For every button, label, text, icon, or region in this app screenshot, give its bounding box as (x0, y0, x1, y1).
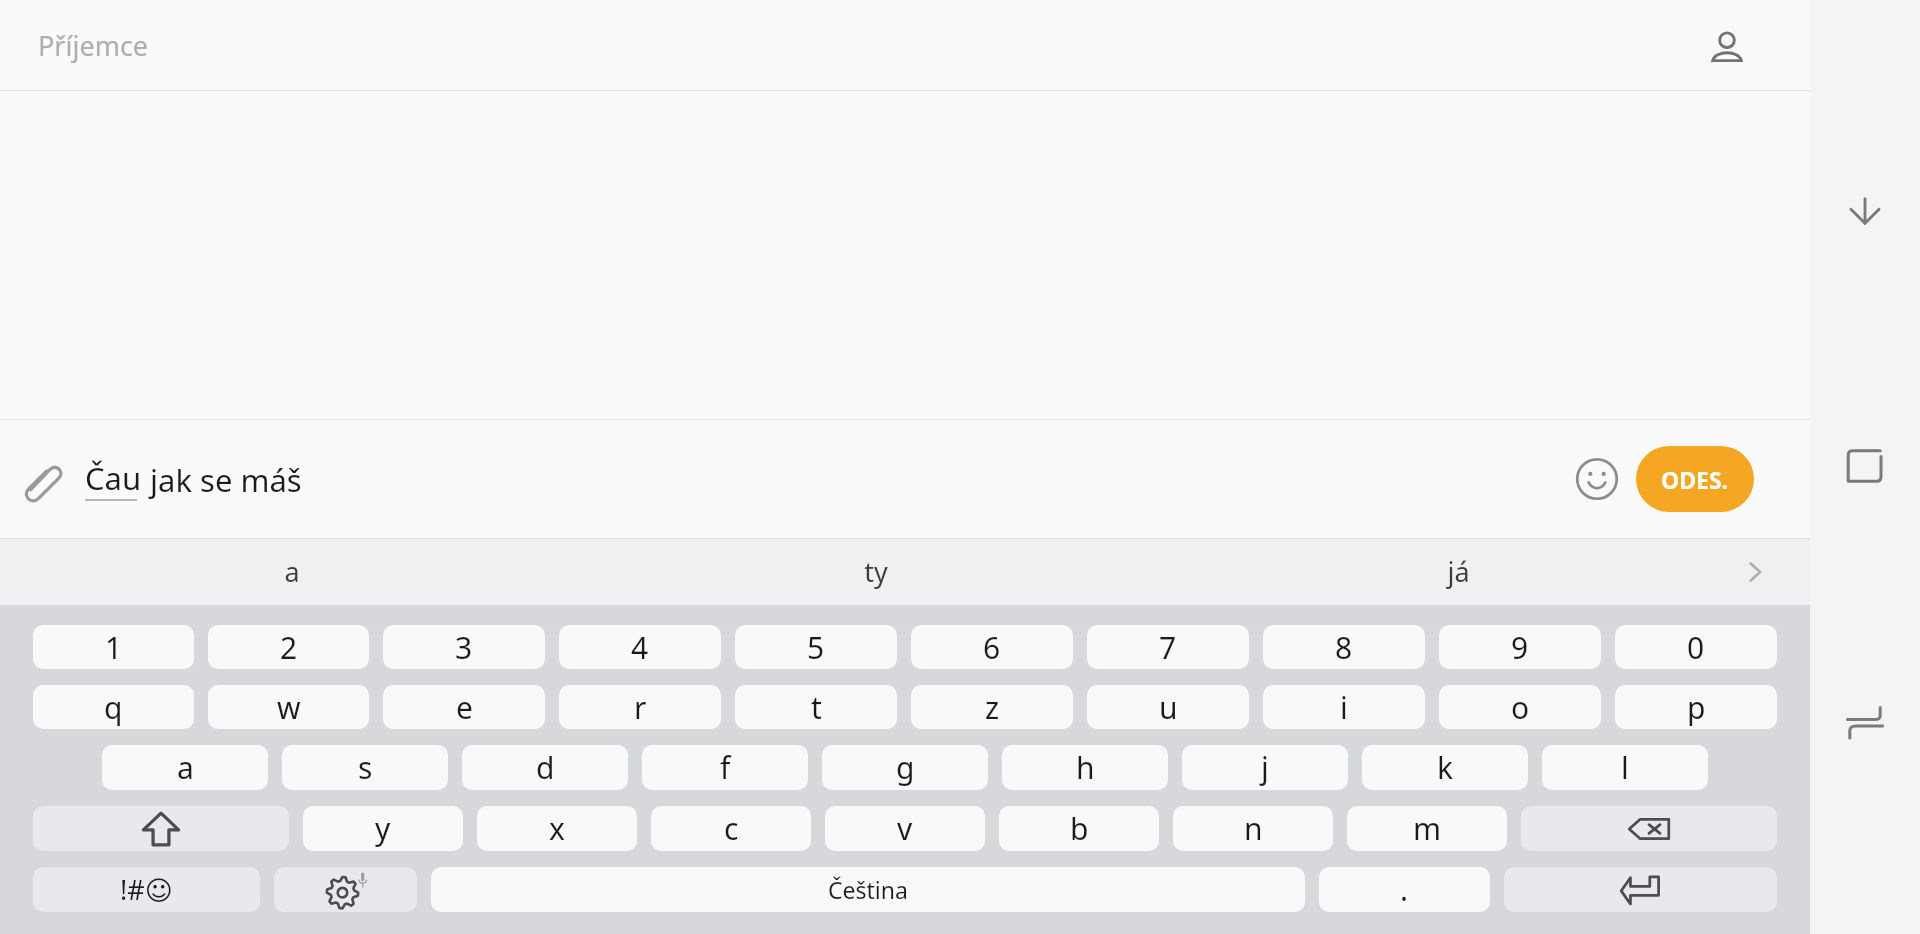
button[interactable]: l (1542, 745, 1708, 790)
staticText: b (1070, 808, 1089, 849)
button[interactable]: 8 (1263, 625, 1425, 669)
staticText: f (720, 747, 731, 788)
staticText: 4 (631, 627, 649, 668)
button[interactable]: !#☺ (33, 867, 260, 912)
staticText: Příjemce (38, 27, 149, 64)
button[interactable]: g (822, 745, 988, 790)
staticText: p (1687, 687, 1706, 728)
button[interactable]: f (642, 745, 808, 790)
staticText: 3 (455, 627, 473, 668)
button[interactable]: a (102, 745, 268, 790)
button[interactable]: b (999, 806, 1159, 851)
staticText: w (277, 687, 301, 728)
staticText: m (1413, 808, 1442, 849)
staticText: . (1400, 869, 1409, 910)
button[interactable]: Back (1821, 678, 1909, 766)
button[interactable]: a (0, 538, 584, 605)
staticText: ty (864, 553, 888, 590)
button[interactable]: t (735, 685, 897, 729)
button[interactable]: Attach (14, 450, 72, 508)
button[interactable]: Čeština (431, 867, 1305, 912)
staticText: a (284, 553, 300, 590)
button[interactable]: Recents (1821, 422, 1909, 510)
button[interactable]: i (1263, 685, 1425, 729)
button[interactable]: n (1173, 806, 1333, 851)
staticText: 7 (1159, 627, 1177, 668)
button[interactable]: Hide keyboard (1821, 167, 1909, 255)
staticText: Čeština (828, 874, 908, 905)
staticText: u (1159, 687, 1178, 728)
staticText: jak se máš (142, 459, 302, 501)
staticText: h (1076, 747, 1095, 788)
staticText: i (1340, 687, 1348, 728)
button[interactable]: 5 (735, 625, 897, 669)
staticText: 5 (807, 627, 825, 668)
staticText: c (724, 808, 739, 849)
staticText: !#☺ (120, 871, 173, 908)
button[interactable]: z (911, 685, 1073, 729)
staticText: ODES. (1661, 464, 1729, 495)
staticText: x (549, 808, 565, 849)
button[interactable]: x (477, 806, 637, 851)
button[interactable]: o (1439, 685, 1601, 729)
button[interactable]: 1 (33, 625, 194, 669)
button[interactable]: j (1182, 745, 1348, 790)
button[interactable]: . (1319, 867, 1490, 912)
staticText: d (536, 747, 555, 788)
staticText: a (177, 747, 194, 788)
staticText: já (1447, 553, 1470, 590)
staticText: t (811, 687, 822, 728)
button[interactable]: h (1002, 745, 1168, 790)
staticText: l (1621, 747, 1629, 788)
button[interactable]: já (1167, 538, 1750, 605)
button[interactable]: r (559, 685, 721, 729)
button[interactable]: Contacts (1702, 21, 1752, 71)
button[interactable]: 0 (1615, 625, 1777, 669)
button[interactable]: ODES. (1636, 446, 1754, 512)
staticText: 6 (983, 627, 1001, 668)
staticText: n (1244, 808, 1263, 849)
staticText: k (1437, 747, 1454, 788)
staticText: j (1261, 747, 1269, 788)
button[interactable]: More suggestions (1732, 549, 1778, 595)
staticText: 2 (280, 627, 298, 668)
staticText: r (634, 687, 647, 728)
button[interactable]: e (383, 685, 545, 729)
staticText: v (897, 808, 913, 849)
button[interactable]: ty (584, 538, 1167, 605)
button[interactable]: 6 (911, 625, 1073, 669)
staticText: 0 (1687, 627, 1705, 668)
staticText: 1 (105, 627, 123, 668)
button[interactable]: Backspace (1521, 806, 1777, 851)
button[interactable]: Settings (274, 867, 417, 912)
button[interactable]: u (1087, 685, 1249, 729)
button[interactable]: 7 (1087, 625, 1249, 669)
staticText: s (358, 747, 373, 788)
staticText: Čau (85, 457, 142, 499)
button[interactable]: 4 (559, 625, 721, 669)
staticText: q (104, 687, 123, 728)
button[interactable]: 3 (383, 625, 545, 669)
staticText: 8 (1335, 627, 1353, 668)
staticText: 9 (1511, 627, 1529, 668)
button[interactable]: c (651, 806, 811, 851)
button[interactable]: y (303, 806, 463, 851)
button[interactable]: 9 (1439, 625, 1601, 669)
staticText: y (375, 808, 391, 849)
button[interactable]: k (1362, 745, 1528, 790)
button[interactable]: Emoji (1569, 451, 1625, 507)
button[interactable]: m (1347, 806, 1507, 851)
staticText: e (456, 687, 473, 728)
button[interactable]: 2 (208, 625, 369, 669)
staticText: z (985, 687, 1000, 728)
button[interactable]: q (33, 685, 194, 729)
button[interactable]: Enter (1504, 867, 1777, 912)
button[interactable]: p (1615, 685, 1777, 729)
button[interactable]: w (208, 685, 369, 729)
button[interactable]: Shift (33, 806, 289, 851)
staticText: g (896, 747, 915, 788)
button[interactable]: d (462, 745, 628, 790)
staticText: o (1511, 687, 1530, 728)
button[interactable]: v (825, 806, 985, 851)
button[interactable]: s (282, 745, 448, 790)
